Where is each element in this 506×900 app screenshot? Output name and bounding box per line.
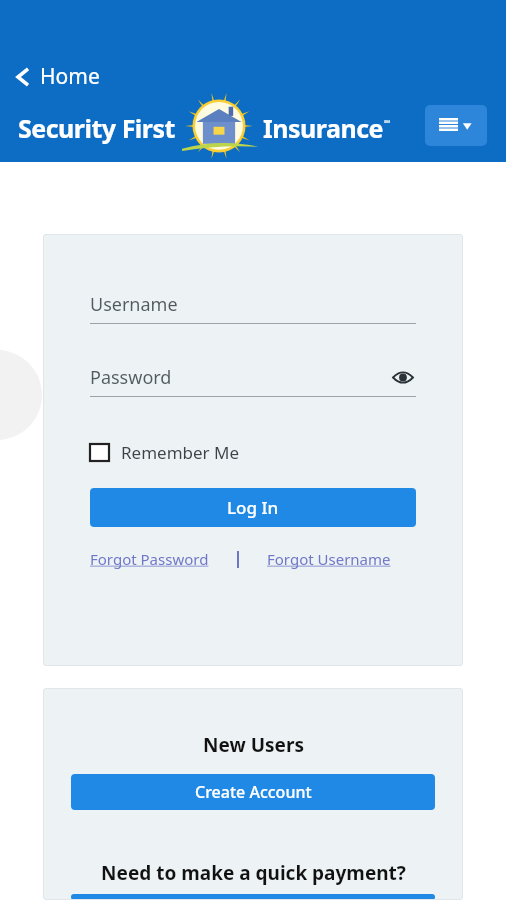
button[interactable]: Password <box>90 364 416 397</box>
staticText: Forgot Password <box>90 549 209 569</box>
button[interactable]: Forgot Username <box>267 547 391 571</box>
staticText: Password <box>90 365 390 390</box>
button[interactable]: Log In <box>90 488 416 527</box>
staticText: Log In <box>227 496 279 519</box>
button[interactable]: Home <box>8 58 106 95</box>
staticText: Forgot Username <box>267 549 391 569</box>
button[interactable]: Username <box>90 292 416 324</box>
staticText: Home <box>40 62 100 91</box>
button[interactable]: Remember Me <box>90 437 248 468</box>
button[interactable]: Show password <box>390 364 416 390</box>
staticText: Security First <box>18 111 175 145</box>
staticText: Insurance <box>263 111 384 145</box>
staticText: Create Account <box>195 781 312 803</box>
staticText: Need to make a quick payment? <box>101 860 406 886</box>
staticText: Username <box>90 292 416 317</box>
staticText: New Users <box>203 732 304 758</box>
button[interactable]: Create Account <box>71 774 435 810</box>
button[interactable]: Quick Pay <box>71 894 435 900</box>
button[interactable]: Menu <box>425 105 487 146</box>
staticText: ℠ <box>384 117 391 128</box>
staticText: Remember Me <box>121 441 240 464</box>
staticText: Quick Pay <box>215 894 291 900</box>
button[interactable]: Forgot Password <box>90 547 209 571</box>
